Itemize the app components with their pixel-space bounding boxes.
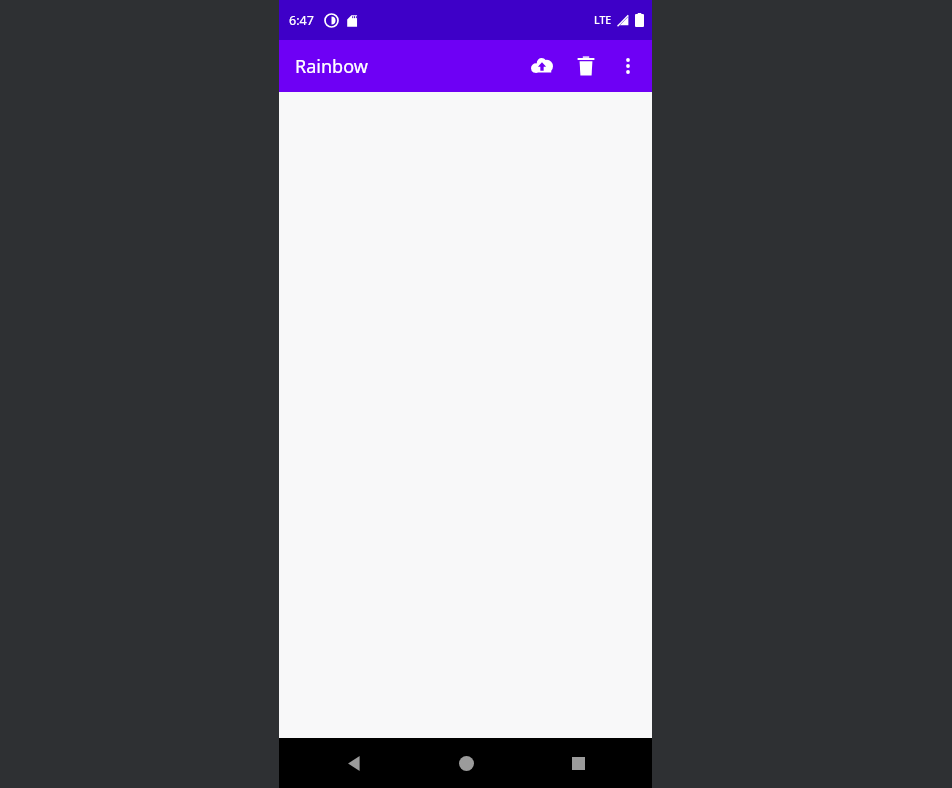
button[interactable]: Delete (564, 44, 608, 88)
staticText: Rainbow (295, 54, 368, 79)
button[interactable]: Backup to cloud (520, 44, 564, 88)
button[interactable]: Home (427, 738, 505, 788)
staticText: LTE (594, 13, 612, 27)
button[interactable]: Back (314, 738, 392, 788)
button[interactable]: Recent apps (539, 738, 617, 788)
staticText: 6:47 (289, 12, 314, 29)
button[interactable]: More options (608, 46, 648, 86)
